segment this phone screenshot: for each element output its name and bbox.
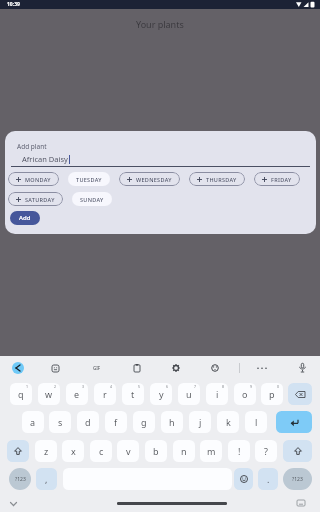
staticText: 2 xyxy=(54,384,57,389)
button[interactable] xyxy=(288,383,312,405)
staticText: ?123 xyxy=(15,476,26,483)
button[interactable] xyxy=(283,440,312,462)
button[interactable]: f xyxy=(105,411,127,433)
button[interactable]: u xyxy=(178,383,200,405)
button[interactable]: . xyxy=(258,468,278,490)
staticText: x xyxy=(71,445,76,457)
button[interactable]: GIF xyxy=(90,362,104,374)
button[interactable]: j xyxy=(189,411,211,433)
staticText: a xyxy=(30,416,36,428)
staticText: FRIDAY xyxy=(271,176,292,183)
button[interactable]: THURSDAY xyxy=(189,172,245,186)
staticText: g xyxy=(141,416,147,428)
staticText: j xyxy=(199,416,202,428)
staticText: 0 xyxy=(277,384,280,389)
staticText: n xyxy=(181,445,187,457)
staticText: 4 xyxy=(110,384,113,389)
staticText: s xyxy=(58,416,63,428)
button[interactable]: SUNDAY xyxy=(72,192,112,206)
staticText: 7 xyxy=(194,384,197,389)
button[interactable]: z xyxy=(35,440,57,462)
staticText: w xyxy=(45,388,53,400)
staticText: , xyxy=(45,473,48,485)
button[interactable]: MONDAY xyxy=(8,172,59,186)
button[interactable]: o xyxy=(234,383,256,405)
staticText: q xyxy=(18,388,24,400)
button[interactable]: t xyxy=(122,383,144,405)
staticText: Add plant xyxy=(17,142,47,151)
staticText: o xyxy=(242,388,248,400)
staticText: THURSDAY xyxy=(206,176,237,183)
staticText: d xyxy=(85,416,91,428)
staticText: MONDAY xyxy=(25,176,51,183)
button[interactable]: SATURDAY xyxy=(8,192,63,206)
staticText: k xyxy=(226,416,231,428)
staticText: i xyxy=(216,388,219,400)
button[interactable]: s xyxy=(49,411,71,433)
button[interactable]: c xyxy=(90,440,112,462)
staticText: h xyxy=(169,416,175,428)
button[interactable]: h xyxy=(161,411,183,433)
button[interactable]: a xyxy=(22,411,44,433)
staticText: z xyxy=(44,445,49,457)
button[interactable]: i xyxy=(206,383,228,405)
button[interactable]: ! xyxy=(228,440,250,462)
button[interactable]: w xyxy=(38,383,60,405)
button[interactable]: , xyxy=(36,468,57,490)
staticText: y xyxy=(159,388,164,400)
button[interactable] xyxy=(276,411,312,433)
staticText: c xyxy=(99,445,104,457)
staticText: 5 xyxy=(138,384,141,389)
staticText: Add xyxy=(19,214,31,222)
button[interactable]: g xyxy=(133,411,155,433)
button[interactable]: Add xyxy=(10,211,40,225)
staticText: f xyxy=(114,416,118,428)
button[interactable]: b xyxy=(145,440,167,462)
staticText: b xyxy=(153,445,159,457)
staticText: ! xyxy=(238,445,241,457)
button[interactable]: ?123 xyxy=(283,468,312,490)
button[interactable]: r xyxy=(94,383,116,405)
staticText: 8 xyxy=(222,384,225,389)
staticText: WEDNESDAY xyxy=(136,176,172,183)
button[interactable] xyxy=(12,362,24,374)
button[interactable]: FRIDAY xyxy=(254,172,300,186)
staticText: r xyxy=(103,388,107,400)
staticText: 1 xyxy=(26,384,29,389)
button[interactable]: TUESDAY xyxy=(68,172,110,186)
staticText: Your plants xyxy=(136,18,184,30)
button[interactable]: l xyxy=(245,411,267,433)
button[interactable]: v xyxy=(117,440,139,462)
staticText: SATURDAY xyxy=(25,196,55,203)
staticText: l xyxy=(255,416,258,428)
staticText: GIF xyxy=(93,365,101,371)
button[interactable]: ? xyxy=(255,440,277,462)
staticText: 9 xyxy=(250,384,253,389)
button[interactable]: n xyxy=(173,440,195,462)
button[interactable]: k xyxy=(217,411,239,433)
button[interactable] xyxy=(7,440,29,462)
staticText: 3 xyxy=(82,384,85,389)
button[interactable] xyxy=(234,468,253,490)
button[interactable]: m xyxy=(200,440,222,462)
staticText: p xyxy=(269,388,275,400)
staticText: 6 xyxy=(166,384,169,389)
button[interactable]: ?123 xyxy=(9,468,31,490)
button[interactable]: x xyxy=(62,440,84,462)
button[interactable]: e xyxy=(66,383,88,405)
staticText: ? xyxy=(264,445,268,457)
staticText: u xyxy=(186,388,192,400)
button[interactable]: y xyxy=(150,383,172,405)
button[interactable]: q xyxy=(10,383,32,405)
staticText: African Daisy xyxy=(22,154,68,164)
button[interactable]: d xyxy=(77,411,99,433)
button[interactable]: p xyxy=(261,383,283,405)
staticText: TUESDAY xyxy=(76,176,102,183)
button[interactable]: WEDNESDAY xyxy=(119,172,180,186)
staticText: ?123 xyxy=(292,476,303,483)
staticText: e xyxy=(74,388,80,400)
staticText: v xyxy=(126,445,131,457)
staticText: SUNDAY xyxy=(80,196,104,203)
staticText: t xyxy=(131,388,135,400)
